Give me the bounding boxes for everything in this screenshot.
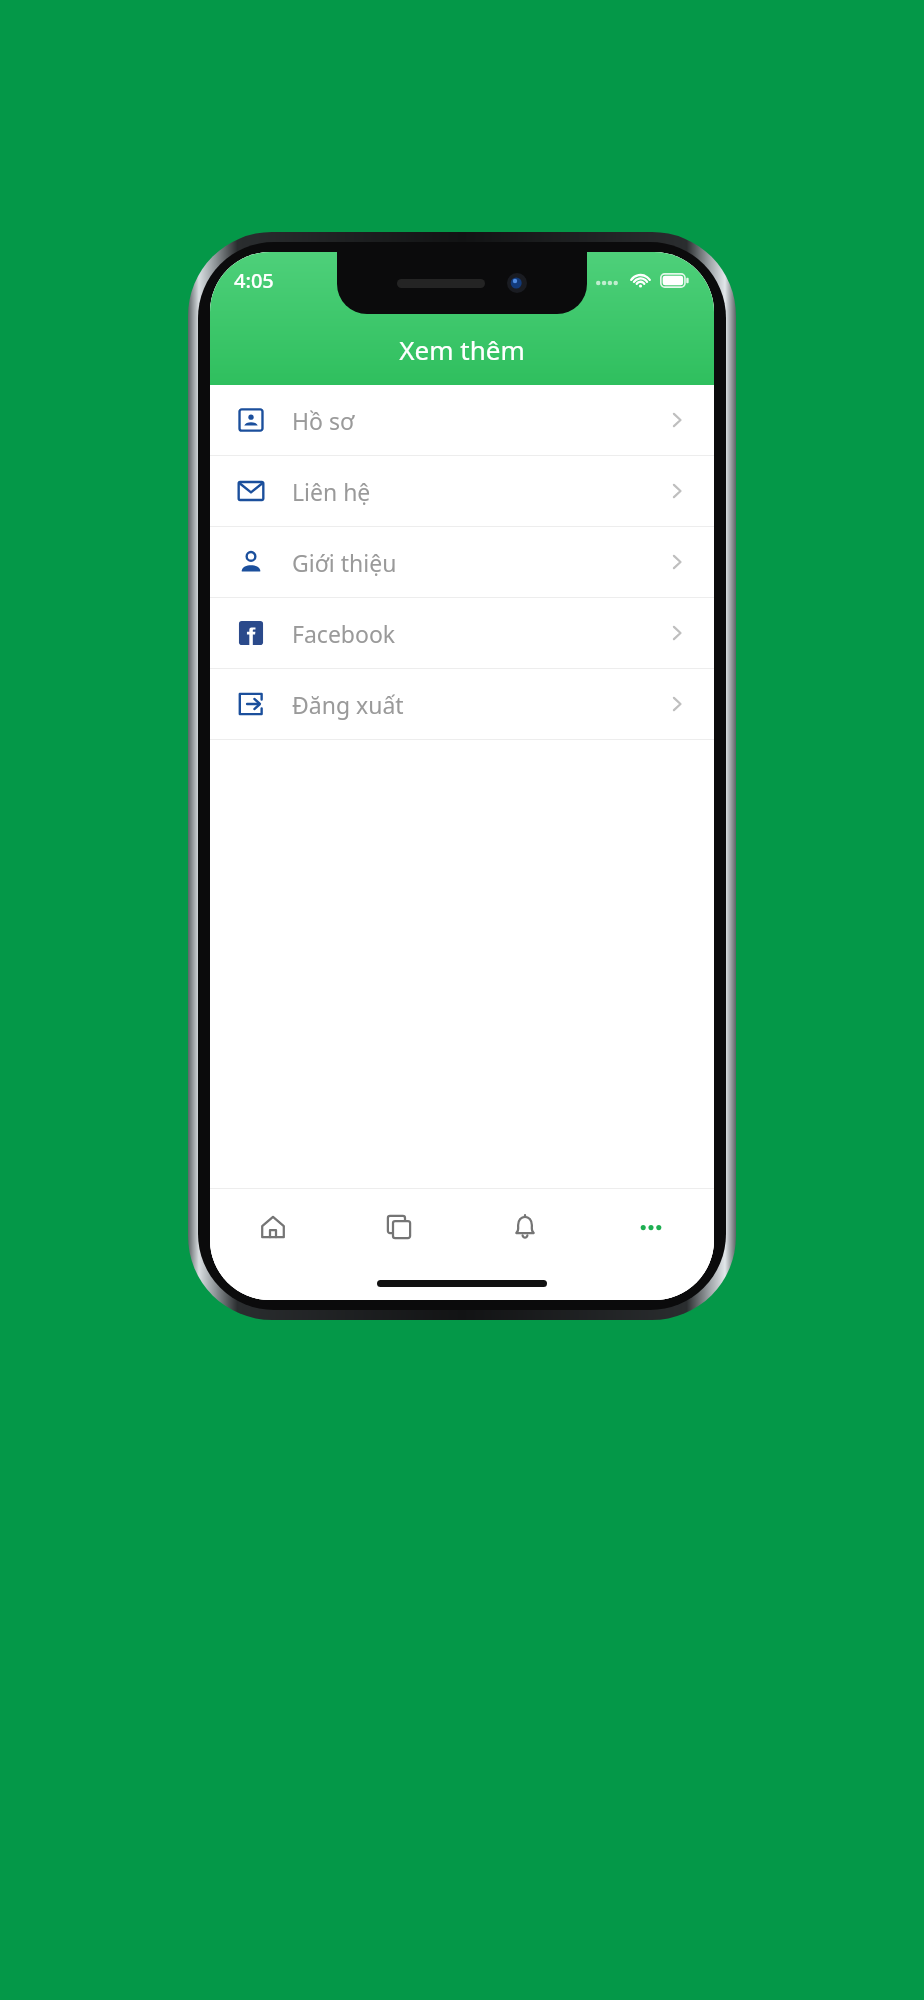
button[interactable]: Home — [210, 1188, 336, 1266]
button[interactable]: Liên hệ — [210, 456, 714, 526]
button[interactable]: Library — [336, 1188, 462, 1266]
button[interactable]: Hồ sơ — [210, 385, 714, 455]
button[interactable]: Giới thiệu — [210, 527, 714, 597]
button[interactable]: Facebook — [210, 598, 714, 668]
staticText: Facebook — [292, 618, 396, 649]
button[interactable]: Đăng xuất — [210, 669, 714, 739]
staticText: Đăng xuất — [292, 689, 404, 720]
staticText: Giới thiệu — [292, 547, 397, 578]
staticText: 4:05 — [234, 267, 274, 294]
staticText: Hồ sơ — [292, 405, 355, 436]
button[interactable]: Notifications — [462, 1188, 588, 1266]
staticText: Xem thêm — [399, 332, 525, 367]
button[interactable]: More — [588, 1188, 714, 1266]
staticText: Liên hệ — [292, 476, 371, 507]
